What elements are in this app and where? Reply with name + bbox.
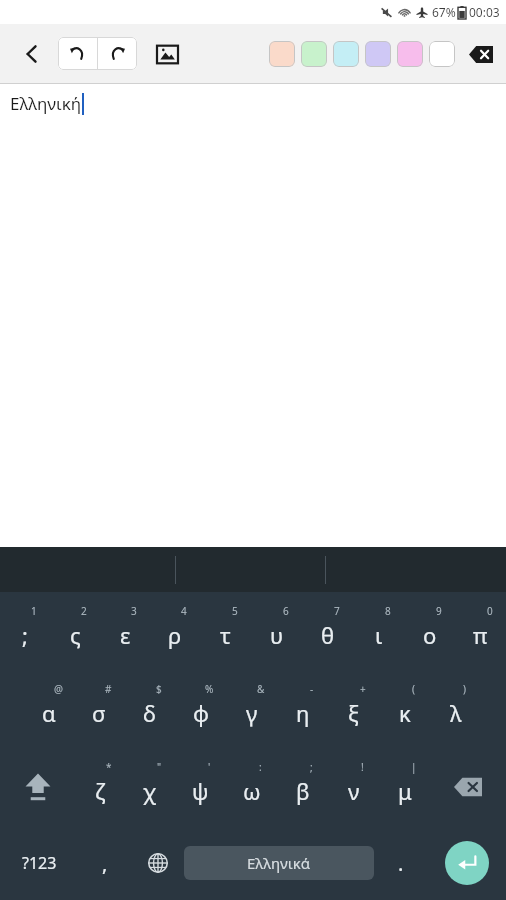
staticText: 3: [131, 604, 137, 618]
button[interactable]: Shift: [0, 748, 75, 826]
staticText: @: [54, 682, 63, 696]
button[interactable]: !: [328, 748, 379, 826]
staticText: ν: [348, 776, 360, 806]
button[interactable]: ": [125, 748, 175, 826]
button[interactable]: Ελληνικά: [184, 846, 374, 880]
staticText: μ: [398, 776, 412, 806]
button[interactable]: Color: [429, 41, 455, 67]
button[interactable]: Enter: [427, 826, 506, 900]
button[interactable]: ): [430, 670, 481, 748]
button[interactable]: ,: [78, 826, 131, 900]
staticText: λ: [450, 698, 462, 728]
staticText: ς: [70, 620, 81, 650]
button[interactable]: ': [175, 748, 226, 826]
staticText: %: [205, 682, 214, 696]
staticText: #: [105, 682, 112, 696]
button[interactable]: 0: [455, 592, 506, 670]
staticText: ,: [102, 850, 108, 877]
staticText: -: [310, 682, 314, 696]
staticText: ;: [22, 620, 28, 650]
staticText: Ελληνική: [10, 92, 82, 115]
button[interactable]: 7: [302, 592, 353, 670]
staticText: ι: [375, 620, 383, 650]
button[interactable]: Insert image: [149, 36, 185, 72]
button[interactable]: *: [75, 748, 125, 826]
staticText: ψ: [192, 776, 209, 806]
button[interactable]: 6: [251, 592, 302, 670]
button[interactable]: Color: [365, 41, 391, 67]
staticText: π: [473, 620, 488, 650]
staticText: ξ: [348, 698, 359, 728]
staticText: θ: [321, 620, 335, 650]
button[interactable]: ;: [277, 748, 328, 826]
button[interactable]: Backspace: [430, 748, 506, 826]
button[interactable]: Redo: [98, 37, 137, 70]
button[interactable]: Color: [333, 41, 359, 67]
button[interactable]: :: [226, 748, 277, 826]
staticText: 5: [232, 604, 238, 618]
staticText: ω: [243, 776, 261, 806]
button[interactable]: Change keyboard language: [131, 826, 184, 900]
staticText: |: [411, 760, 417, 774]
staticText: &: [257, 682, 265, 696]
staticText: 9: [436, 604, 442, 618]
button[interactable]: &: [226, 670, 277, 748]
staticText: ): [463, 682, 466, 696]
button[interactable]: #: [74, 670, 124, 748]
staticText: .: [398, 850, 404, 877]
staticText: *: [106, 760, 112, 774]
button[interactable]: 2: [50, 592, 100, 670]
button[interactable]: -: [277, 670, 328, 748]
staticText: 1: [31, 604, 37, 618]
staticText: :: [259, 760, 262, 774]
button[interactable]: Color: [301, 41, 327, 67]
button[interactable]: Color: [397, 41, 423, 67]
staticText: υ: [270, 620, 284, 650]
button[interactable]: |: [379, 748, 430, 826]
button[interactable]: $: [124, 670, 175, 748]
button[interactable]: (: [379, 670, 430, 748]
button[interactable]: 3: [100, 592, 150, 670]
button[interactable]: 4: [150, 592, 200, 670]
staticText: 0: [487, 604, 493, 618]
staticText: ": [157, 760, 162, 774]
staticText: ;: [310, 760, 313, 774]
staticText: 4: [181, 604, 187, 618]
staticText: ζ: [95, 776, 106, 806]
button[interactable]: ?123: [0, 826, 78, 900]
staticText: +: [360, 682, 366, 696]
button[interactable]: Undo: [58, 37, 97, 70]
staticText: τ: [220, 620, 231, 650]
staticText: ρ: [168, 620, 182, 650]
button[interactable]: %: [175, 670, 226, 748]
button[interactable]: 9: [404, 592, 455, 670]
staticText: α: [42, 698, 56, 728]
staticText: 8: [385, 604, 391, 618]
button[interactable]: @: [24, 670, 74, 748]
staticText: 7: [334, 604, 340, 618]
button[interactable]: Erase: [464, 37, 498, 71]
button[interactable]: 1: [0, 592, 50, 670]
button[interactable]: +: [328, 670, 379, 748]
button[interactable]: Back: [14, 36, 50, 72]
button[interactable]: .: [374, 826, 427, 900]
staticText: κ: [399, 698, 411, 728]
staticText: (: [412, 682, 415, 696]
staticText: χ: [143, 776, 157, 806]
staticText: $: [156, 682, 162, 696]
staticText: 6: [283, 604, 289, 618]
staticText: 2: [81, 604, 87, 618]
staticText: ': [208, 760, 211, 774]
staticText: 67%: [432, 4, 456, 20]
staticText: β: [296, 776, 310, 806]
staticText: Ελληνικά: [247, 853, 311, 873]
staticText: σ: [92, 698, 106, 728]
staticText: ο: [423, 620, 437, 650]
button[interactable]: Color: [269, 41, 295, 67]
button[interactable]: 5: [200, 592, 251, 670]
staticText: η: [296, 698, 310, 728]
staticText: γ: [246, 698, 258, 728]
staticText: ε: [120, 620, 131, 650]
staticText: ?123: [22, 852, 57, 874]
button[interactable]: 8: [353, 592, 404, 670]
